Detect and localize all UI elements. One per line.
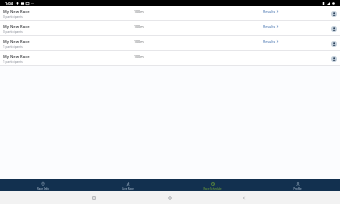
button[interactable]: Home: [161, 191, 179, 204]
staticText: Results: [263, 24, 276, 29]
button[interactable]: My New Race: [0, 51, 340, 66]
button[interactable]: Runner profile: [331, 56, 337, 62]
button[interactable]: My New Race: [0, 21, 340, 36]
button[interactable]: Profile: [255, 179, 340, 191]
button[interactable]: Runner profile: [331, 41, 337, 47]
button[interactable]: Results: [261, 8, 281, 15]
button[interactable]: Back: [235, 191, 253, 204]
staticText: My New Race: [3, 39, 30, 44]
staticText: 0 participants: [3, 15, 23, 19]
staticText: My New Race: [3, 54, 30, 59]
staticText: 100m: [134, 54, 144, 59]
button[interactable]: Results: [261, 38, 281, 45]
staticText: Race Schedule: [203, 187, 222, 191]
staticText: Live Race: [122, 187, 134, 191]
staticText: 1 participants: [3, 60, 23, 64]
button[interactable]: My New Race: [0, 6, 340, 21]
staticText: 100m: [134, 39, 144, 44]
staticText: 1:04: [5, 1, 13, 6]
staticText: My New Race: [3, 24, 30, 29]
staticText: My New Race: [3, 9, 30, 14]
staticText: 100m: [134, 24, 144, 29]
staticText: Results: [263, 39, 276, 44]
staticText: 1 participants: [3, 45, 23, 49]
staticText: 100m: [134, 9, 144, 14]
button[interactable]: Race Schedule: [170, 179, 255, 191]
button[interactable]: Recents: [85, 191, 103, 204]
button[interactable]: My New Race: [0, 36, 340, 51]
button[interactable]: Live Race: [85, 179, 170, 191]
button[interactable]: Runner profile: [331, 26, 337, 32]
button[interactable]: Results: [261, 23, 281, 30]
staticText: Profile: [293, 187, 302, 191]
button[interactable]: Runner profile: [331, 11, 337, 17]
staticText: 0 participants: [3, 30, 23, 34]
button[interactable]: Race Info: [0, 179, 85, 191]
staticText: Race Info: [37, 187, 49, 191]
staticText: Results: [263, 9, 276, 14]
